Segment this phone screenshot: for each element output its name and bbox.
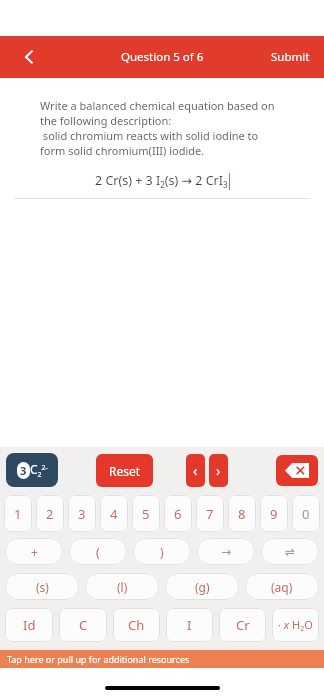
staticText: I: [187, 616, 192, 634]
button[interactable]: 3: [6, 453, 58, 487]
staticText: Question 5 of 6: [121, 49, 204, 65]
staticText: +: [31, 544, 38, 560]
staticText: 2 Cr(s) + 3 I2(s) → 2 CrI3: [95, 172, 228, 190]
staticText: 9: [270, 505, 278, 523]
staticText: Ch: [128, 616, 145, 634]
staticText: (aq): [271, 579, 293, 595]
button[interactable]: 2 Cr(s) + 3 I2(s) → 2 CrI3: [14, 172, 310, 190]
staticText: 7: [206, 505, 214, 523]
staticText: C22-: [30, 461, 48, 479]
staticText: C: [79, 616, 88, 634]
staticText: 4: [110, 505, 118, 523]
button[interactable]: 9: [260, 495, 288, 532]
button[interactable]: (s): [5, 573, 79, 600]
staticText: Write a balanced chemical equation based…: [40, 98, 284, 128]
button[interactable]: (aq): [245, 573, 319, 600]
button[interactable]: I: [166, 608, 213, 642]
button[interactable]: 7: [196, 495, 224, 532]
button[interactable]: 4: [100, 495, 128, 532]
staticText: ): [160, 544, 164, 560]
button[interactable]: Move cursor left: [186, 454, 205, 487]
button[interactable]: Ch: [113, 608, 160, 642]
button[interactable]: Reset: [96, 454, 153, 487]
staticText: 3: [78, 505, 86, 523]
button[interactable]: Back: [10, 38, 48, 76]
staticText: ›: [216, 461, 221, 480]
staticText: Cr: [236, 616, 250, 634]
staticText: Tap here or pull up for additional resou…: [7, 653, 190, 665]
button[interactable]: (g): [165, 573, 239, 600]
staticText: (: [96, 544, 100, 560]
button[interactable]: +: [5, 538, 63, 565]
staticText: · x H2O: [278, 617, 313, 633]
staticText: ⇌: [285, 545, 296, 559]
button[interactable]: · x H2O: [272, 608, 319, 642]
button[interactable]: 0: [292, 495, 320, 532]
staticText: solid chromium reacts with solid iodine …: [40, 128, 284, 158]
button[interactable]: 8: [228, 495, 256, 532]
staticText: 1: [14, 505, 22, 523]
staticText: 5: [142, 505, 150, 523]
button[interactable]: Id: [5, 608, 53, 642]
button[interactable]: (l): [85, 573, 159, 600]
staticText: Reset: [109, 463, 141, 479]
button[interactable]: 2: [36, 495, 64, 532]
staticText: Submit: [271, 49, 310, 65]
button[interactable]: →: [197, 538, 255, 565]
button[interactable]: 5: [132, 495, 160, 532]
staticText: 2: [46, 505, 54, 523]
button[interactable]: 6: [164, 495, 192, 532]
staticText: 3: [20, 463, 27, 478]
button[interactable]: ⇌: [261, 538, 319, 565]
button[interactable]: Move cursor right: [209, 454, 228, 487]
staticText: →: [221, 545, 232, 559]
staticText: 0: [302, 505, 310, 523]
button[interactable]: C: [59, 608, 107, 642]
button[interactable]: ): [133, 538, 191, 565]
staticText: 6: [174, 505, 182, 523]
button[interactable]: 1: [4, 495, 32, 532]
staticText: (g): [195, 579, 210, 595]
button[interactable]: 3: [68, 495, 96, 532]
staticText: (s): [36, 579, 49, 595]
staticText: Id: [23, 616, 36, 634]
staticText: (l): [117, 579, 128, 595]
staticText: 8: [238, 505, 246, 523]
button[interactable]: (: [69, 538, 127, 565]
button[interactable]: Submit: [257, 36, 324, 78]
button[interactable]: Cr: [219, 608, 266, 642]
staticText: ‹: [193, 461, 198, 480]
button[interactable]: Backspace: [276, 455, 318, 486]
button[interactable]: Tap here or pull up for additional resou…: [0, 650, 324, 668]
